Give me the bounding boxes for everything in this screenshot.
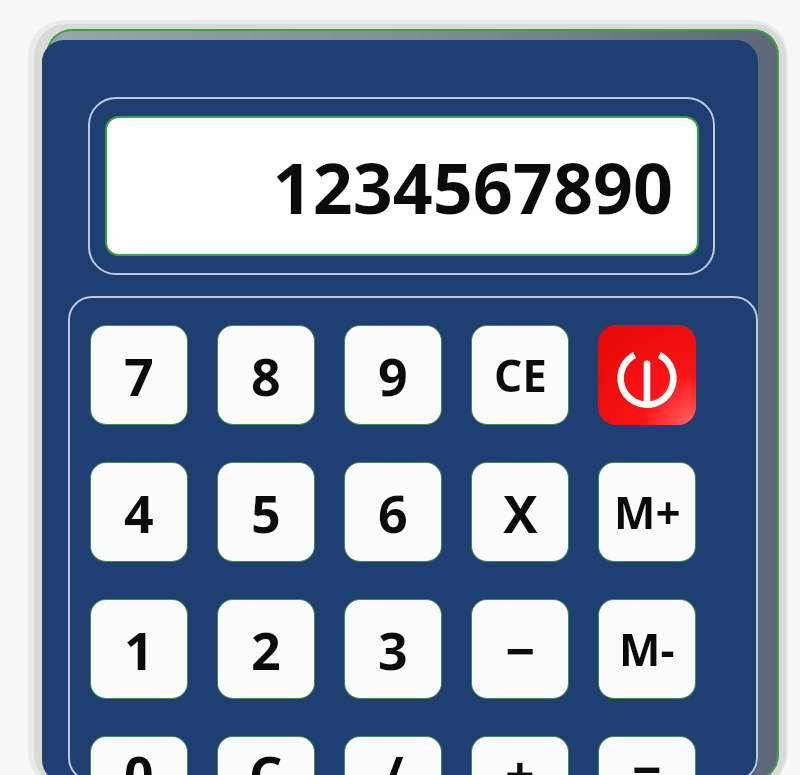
button[interactable]: 1: [91, 600, 187, 698]
staticText: 5: [251, 477, 281, 548]
button[interactable]: +: [472, 737, 568, 775]
staticText: +: [505, 738, 535, 775]
button[interactable]: M+: [599, 463, 695, 561]
staticText: 4: [124, 477, 154, 548]
staticText: 3: [378, 614, 408, 685]
button[interactable]: 6: [345, 463, 441, 561]
button[interactable]: M-: [599, 600, 695, 698]
button[interactable]: 0: [91, 737, 187, 775]
button[interactable]: 8: [218, 326, 314, 424]
staticText: 1234567890: [272, 139, 673, 234]
button[interactable]: 3: [345, 600, 441, 698]
staticText: 1: [124, 614, 154, 685]
staticText: C: [249, 738, 283, 775]
button[interactable]: 4: [91, 463, 187, 561]
button[interactable]: /: [345, 737, 441, 775]
button[interactable]: 9: [345, 326, 441, 424]
button[interactable]: 5: [218, 463, 314, 561]
button[interactable]: −: [472, 600, 568, 698]
button[interactable]: CE: [472, 326, 568, 424]
staticText: 8: [251, 340, 281, 411]
staticText: −: [505, 614, 536, 685]
staticText: 9: [378, 340, 408, 411]
staticText: 6: [378, 477, 408, 548]
button[interactable]: 7: [91, 326, 187, 424]
button[interactable]: Power: [598, 325, 696, 425]
button[interactable]: X: [472, 463, 568, 561]
staticText: 0: [124, 738, 154, 775]
button[interactable]: 2: [218, 600, 314, 698]
button[interactable]: C: [218, 737, 314, 775]
staticText: CE: [494, 345, 547, 405]
staticText: 2: [251, 614, 281, 685]
staticText: 7: [124, 340, 154, 411]
staticText: M-: [619, 619, 675, 679]
staticText: X: [503, 477, 538, 548]
staticText: =: [632, 738, 662, 775]
button[interactable]: =: [599, 737, 695, 775]
staticText: /: [382, 738, 404, 775]
staticText: M+: [614, 482, 681, 542]
button[interactable]: 1234567890: [107, 118, 697, 254]
